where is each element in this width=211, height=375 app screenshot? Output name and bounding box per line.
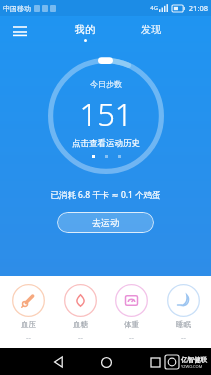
staticText: 去运动	[92, 217, 119, 228]
button[interactable]: Recents	[146, 353, 164, 371]
staticText: --	[26, 332, 31, 342]
staticText: 血糖	[73, 320, 88, 329]
staticText: --	[78, 332, 83, 342]
button[interactable]: Menu	[8, 20, 32, 44]
button[interactable]: 睡眠	[159, 284, 207, 342]
staticText: 中国移动	[3, 4, 31, 13]
staticText: 今日步数	[90, 79, 122, 89]
staticText: 点击查看运动历史	[72, 138, 140, 149]
staticText: 4G	[150, 4, 158, 12]
staticText: 已消耗 6.8 千卡 ≈ 0.1 个鸡蛋	[0, 189, 211, 201]
button[interactable]: Home	[95, 351, 117, 373]
button[interactable]: 我的	[75, 23, 95, 42]
staticText: 亿智健联	[181, 356, 207, 364]
button[interactable]: 血压	[4, 284, 52, 342]
button[interactable]: 血糖	[56, 284, 104, 342]
button[interactable]: 体重	[107, 284, 155, 342]
staticText: 体重	[124, 320, 139, 329]
staticText: 151	[79, 93, 133, 135]
button[interactable]: Back	[48, 351, 70, 373]
staticText: 血压	[21, 320, 36, 329]
button[interactable]: 今日步数 151，点击查看运动历史	[48, 58, 164, 174]
staticText: YZWO.COM	[181, 364, 203, 369]
staticText: 发现	[141, 23, 161, 36]
staticText: 21:08	[188, 3, 208, 13]
staticText: 我的	[75, 23, 95, 36]
button[interactable]: 发现	[141, 23, 161, 42]
button[interactable]: 去运动	[57, 212, 154, 233]
staticText: --	[181, 332, 186, 342]
staticText: 睡眠	[176, 320, 191, 329]
staticText: --	[129, 332, 134, 342]
